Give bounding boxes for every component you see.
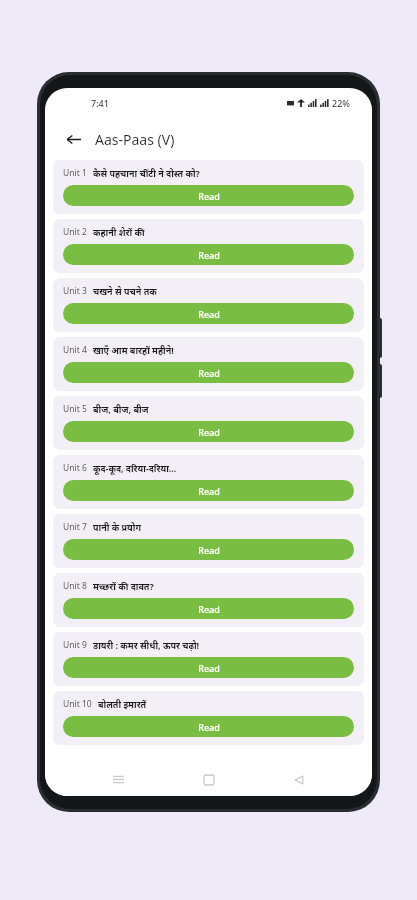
staticText: Unit 1 bbox=[63, 167, 87, 179]
button[interactable]: Back bbox=[281, 763, 317, 796]
staticText: बोलती इमारतें bbox=[98, 698, 147, 710]
staticText: Read bbox=[198, 485, 220, 497]
staticText: Read bbox=[198, 190, 220, 202]
staticText: कैसे पहचाना चींटी ने दोस्त को? bbox=[93, 167, 200, 179]
button[interactable]: Read bbox=[63, 539, 354, 560]
button[interactable]: Unit 3 bbox=[53, 278, 364, 332]
staticText: Read bbox=[198, 367, 220, 379]
staticText: मच्छरों की दावत? bbox=[93, 580, 154, 592]
staticText: चखने से पचने तक bbox=[93, 285, 157, 297]
staticText: Read bbox=[198, 308, 220, 320]
button[interactable]: Unit 9 bbox=[53, 632, 364, 686]
button[interactable]: Read bbox=[63, 303, 354, 324]
staticText: Read bbox=[198, 603, 220, 615]
button[interactable]: Read bbox=[63, 362, 354, 383]
staticText: Unit 3 bbox=[63, 285, 87, 297]
button[interactable]: Unit 8 bbox=[53, 573, 364, 627]
staticText: Read bbox=[198, 544, 220, 556]
staticText: Unit 7 bbox=[63, 521, 87, 533]
button[interactable]: Read bbox=[63, 657, 354, 678]
staticText: डायरी : कमर सीधी, ऊपर चढ़ो! bbox=[93, 639, 200, 651]
staticText: Unit 6 bbox=[63, 462, 87, 474]
staticText: Unit 10 bbox=[63, 698, 92, 710]
button[interactable]: Read bbox=[63, 421, 354, 442]
button[interactable]: Unit 1 bbox=[53, 160, 364, 214]
button[interactable]: Unit 4 bbox=[53, 337, 364, 391]
button[interactable]: Read bbox=[63, 716, 354, 737]
button[interactable]: Unit 7 bbox=[53, 514, 364, 568]
staticText: Read bbox=[198, 662, 220, 674]
button[interactable]: Unit 10 bbox=[53, 691, 364, 745]
staticText: 22% bbox=[332, 97, 350, 109]
staticText: Unit 4 bbox=[63, 344, 87, 356]
staticText: Unit 2 bbox=[63, 226, 87, 238]
staticText: Unit 9 bbox=[63, 639, 87, 651]
staticText: Read bbox=[198, 426, 220, 438]
staticText: Read bbox=[198, 721, 220, 733]
staticText: Read bbox=[198, 249, 220, 261]
button[interactable]: Recent apps bbox=[100, 763, 136, 796]
button[interactable]: Read bbox=[63, 185, 354, 206]
staticText: Aas-Paas (V) bbox=[95, 130, 175, 149]
button[interactable]: Read bbox=[63, 480, 354, 501]
staticText: कूद-कूद, दरिया-दरिया... bbox=[93, 462, 177, 474]
staticText: खाएँ आम बारहों महीने! bbox=[93, 344, 174, 356]
button[interactable]: Unit 5 bbox=[53, 396, 364, 450]
staticText: Unit 5 bbox=[63, 403, 87, 415]
staticText: Unit 8 bbox=[63, 580, 87, 592]
staticText: बीज, बीज, बीज bbox=[93, 403, 149, 415]
staticText: पानी के प्रयोग bbox=[93, 521, 141, 533]
staticText: 7:41 bbox=[91, 97, 109, 109]
button[interactable]: Back bbox=[59, 125, 87, 153]
button[interactable]: Read bbox=[63, 598, 354, 619]
staticText: कहानी शेरों की bbox=[93, 226, 145, 238]
button[interactable]: Home bbox=[191, 763, 227, 796]
button[interactable]: Read bbox=[63, 244, 354, 265]
button[interactable]: Unit 2 bbox=[53, 219, 364, 273]
button[interactable]: Unit 6 bbox=[53, 455, 364, 509]
